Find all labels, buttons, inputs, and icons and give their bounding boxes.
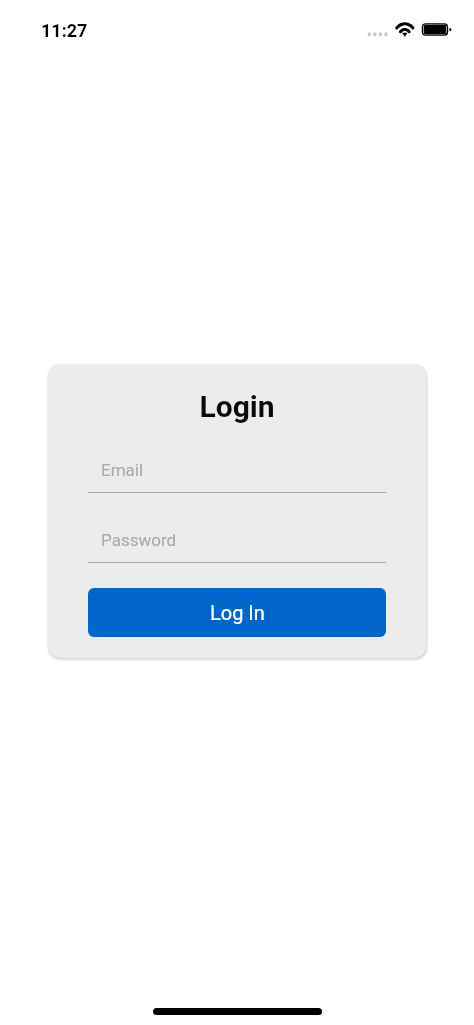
staticText: 11:27: [41, 20, 88, 41]
staticText: Password: [101, 530, 177, 550]
staticText: Login: [48, 389, 426, 424]
button[interactable]: Password: [88, 530, 386, 563]
other: Signal, Wi-Fi and battery status: [0, 0, 474, 52]
staticText: Email: [101, 460, 144, 480]
button[interactable]: Email: [88, 460, 386, 493]
button[interactable]: Log In: [88, 588, 386, 637]
staticText: Log In: [210, 601, 265, 624]
